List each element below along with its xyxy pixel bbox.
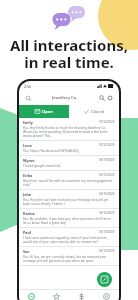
- staticText: 05/14/2020: [99, 230, 115, 234]
- staticText: You: Hi Sue, we are currently closed, bu…: [23, 255, 115, 263]
- staticText: 06/19/2020: [99, 158, 115, 162]
- staticText: Jewellery Co.: [52, 95, 78, 101]
- staticText: Open: [42, 109, 53, 115]
- button[interactable]: Compose message: [97, 272, 112, 287]
- button[interactable]: Closed: [69, 105, 119, 118]
- button[interactable]: Leon: [19, 141, 119, 155]
- button[interactable]: More options: [106, 94, 114, 102]
- staticText: Leon: [23, 143, 32, 148]
- staticText: John: [23, 192, 32, 197]
- staticText: You: Hey Emily thanks so much for choosi…: [23, 126, 115, 138]
- staticText: 07/22/2020: [99, 120, 115, 124]
- staticText: 07/22/2020: [99, 143, 115, 147]
- button[interactable]: Emily: [19, 118, 119, 140]
- button[interactable]: Sue: [19, 247, 119, 265]
- button[interactable]: Payments: [69, 290, 94, 300]
- button[interactable]: Karina: [19, 209, 119, 227]
- staticText: 06/16/2020: [99, 211, 115, 215]
- staticText: Clicked google review link: [23, 164, 61, 168]
- button[interactable]: Account: [94, 290, 119, 300]
- staticText: Closed: [91, 109, 105, 115]
- button[interactable]: Menu: [24, 94, 32, 102]
- staticText: All interactions, in real time.: [10, 35, 128, 73]
- staticText: Erika: [23, 173, 33, 178]
- staticText: Sue: [23, 249, 30, 254]
- staticText: Karina: [23, 211, 35, 216]
- staticText: 06/16/2020: [99, 192, 115, 196]
- button[interactable]: John: [19, 190, 119, 208]
- staticText: 06/16/2020: [99, 173, 115, 177]
- staticText: You: No problem, if you have any other q…: [23, 217, 115, 225]
- button[interactable]: Paul: [19, 228, 119, 246]
- staticText: You: Hey John, we have received your mes…: [23, 198, 115, 206]
- staticText: Myron: [23, 158, 35, 163]
- button[interactable]: Messages: [19, 290, 44, 300]
- button[interactable]: Myron: [19, 156, 119, 170]
- staticText: I had some questions regarding some of y…: [23, 236, 115, 244]
- staticText: Hey there, would I be able to customise …: [23, 179, 115, 187]
- staticText: You: https://facebook.so/HkFfJuNkGQy: [23, 149, 79, 153]
- button[interactable]: Reviews: [44, 290, 69, 300]
- staticText: Paul: [23, 230, 31, 235]
- staticText: 05/12/2020: [99, 249, 115, 253]
- button[interactable]: Erika: [19, 171, 119, 189]
- button[interactable]: Open: [19, 105, 69, 118]
- button[interactable]: Search: [98, 94, 106, 102]
- staticText: 2:56: [24, 84, 31, 89]
- staticText: Emily: [23, 120, 33, 125]
